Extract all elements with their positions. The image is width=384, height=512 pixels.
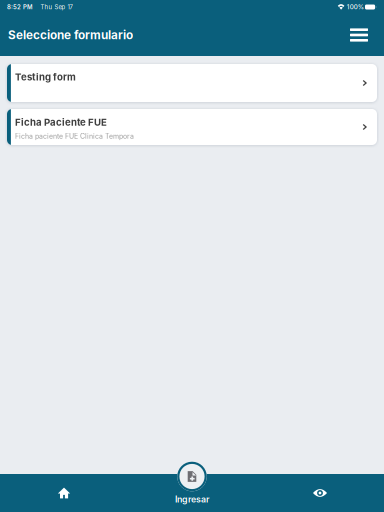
button[interactable]: Menu: [341, 14, 376, 56]
staticText: Testing form: [15, 71, 76, 83]
staticText: 100%: [347, 3, 364, 11]
staticText: Ficha paciente FUE Clinica Tempora: [15, 132, 134, 140]
staticText: Ficha Paciente FUE: [15, 116, 107, 128]
button[interactable]: Ingresar: [176, 460, 208, 492]
staticText: 8:52 PM: [7, 3, 33, 11]
button[interactable]: Testing form: [7, 64, 377, 102]
staticText: Seleccione formulario: [8, 28, 133, 42]
staticText: Ingresar: [175, 494, 209, 504]
button[interactable]: Ficha Paciente FUE: [7, 109, 377, 145]
button[interactable]: Ver: [256, 474, 384, 512]
button[interactable]: Ingresar: [128, 474, 256, 512]
button[interactable]: Inicio: [0, 474, 128, 512]
staticText: Thu Sep 17: [40, 3, 72, 11]
